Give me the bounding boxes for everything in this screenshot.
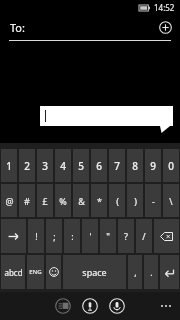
staticText: @ bbox=[5, 195, 14, 207]
button[interactable]: 9 bbox=[145, 149, 161, 182]
button[interactable]: 0 bbox=[163, 149, 179, 182]
staticText: ( bbox=[116, 195, 119, 207]
button[interactable]: ( bbox=[109, 184, 125, 217]
staticText: 8 bbox=[132, 159, 138, 173]
button[interactable]: 2 bbox=[19, 149, 35, 182]
button[interactable]: 5 bbox=[73, 149, 89, 182]
staticText: " bbox=[106, 230, 110, 242]
staticText: * bbox=[97, 195, 102, 207]
staticText: abcd bbox=[4, 267, 23, 278]
button[interactable]: 8 bbox=[127, 149, 143, 182]
staticText: 6 bbox=[96, 159, 102, 173]
staticText: . bbox=[150, 266, 153, 278]
button[interactable]: 1 bbox=[1, 149, 17, 182]
button[interactable]: space bbox=[63, 255, 126, 289]
staticText: 3 bbox=[42, 159, 48, 173]
staticText: ; bbox=[53, 230, 56, 242]
staticText: ) bbox=[134, 195, 137, 207]
button[interactable]: Quick text bbox=[55, 298, 71, 314]
staticText: / bbox=[142, 230, 146, 242]
staticText: 5 bbox=[78, 159, 84, 173]
staticText: ? bbox=[124, 230, 128, 242]
button[interactable]: Emoji bbox=[46, 255, 61, 289]
button[interactable]: 7 bbox=[109, 149, 125, 182]
button[interactable]: Attach bbox=[82, 298, 98, 314]
button[interactable]: " bbox=[100, 219, 116, 253]
staticText: - bbox=[152, 195, 155, 207]
button[interactable]: 3 bbox=[37, 149, 53, 182]
staticText: 1 bbox=[6, 159, 12, 173]
staticText: 14:52 bbox=[154, 2, 175, 13]
button[interactable]: £ bbox=[37, 184, 53, 217]
button[interactable]: \ bbox=[163, 184, 179, 217]
staticText: 4 bbox=[60, 159, 66, 173]
staticText: % bbox=[59, 195, 67, 207]
button[interactable]: ! bbox=[28, 219, 44, 253]
staticText: ! bbox=[35, 230, 38, 242]
button[interactable]: ? bbox=[118, 219, 134, 253]
button[interactable]: ) bbox=[127, 184, 143, 217]
button[interactable]: / bbox=[136, 219, 152, 253]
button[interactable]: Enter bbox=[160, 255, 179, 289]
staticText: 9 bbox=[150, 159, 156, 173]
staticText: 2 bbox=[24, 159, 30, 173]
staticText: , bbox=[134, 266, 137, 278]
button[interactable] bbox=[40, 106, 173, 126]
staticText: space bbox=[82, 266, 107, 278]
button[interactable]: ' bbox=[82, 219, 98, 253]
button[interactable]: ENG bbox=[27, 255, 44, 289]
staticText: : bbox=[71, 230, 74, 242]
button[interactable]: - bbox=[145, 184, 161, 217]
staticText: # bbox=[24, 195, 30, 207]
staticText: 0 bbox=[168, 159, 174, 173]
button[interactable]: , bbox=[128, 255, 142, 289]
button[interactable]: * bbox=[91, 184, 107, 217]
button[interactable]: @ bbox=[1, 184, 17, 217]
button[interactable]: More symbols bbox=[1, 219, 26, 253]
staticText: To: bbox=[10, 20, 25, 35]
staticText: 7 bbox=[114, 159, 120, 173]
button[interactable]: Add recipient bbox=[159, 21, 172, 34]
button[interactable]: 4 bbox=[55, 149, 71, 182]
button[interactable]: % bbox=[55, 184, 71, 217]
staticText: ENG bbox=[29, 268, 42, 276]
staticText: \ bbox=[169, 195, 173, 207]
button[interactable]: & bbox=[73, 184, 89, 217]
button[interactable]: More options bbox=[158, 298, 174, 314]
staticText: ' bbox=[89, 230, 92, 242]
staticText: & bbox=[78, 195, 85, 207]
button[interactable]: To: bbox=[0, 14, 180, 40]
button[interactable]: 6 bbox=[91, 149, 107, 182]
button[interactable]: ; bbox=[46, 219, 62, 253]
button[interactable]: : bbox=[64, 219, 80, 253]
button[interactable]: abcd bbox=[1, 255, 25, 289]
button[interactable]: Voice input bbox=[109, 298, 125, 314]
button[interactable]: Backspace bbox=[154, 219, 179, 253]
button[interactable]: # bbox=[19, 184, 35, 217]
staticText: £ bbox=[42, 195, 48, 207]
button[interactable]: . bbox=[144, 255, 158, 289]
